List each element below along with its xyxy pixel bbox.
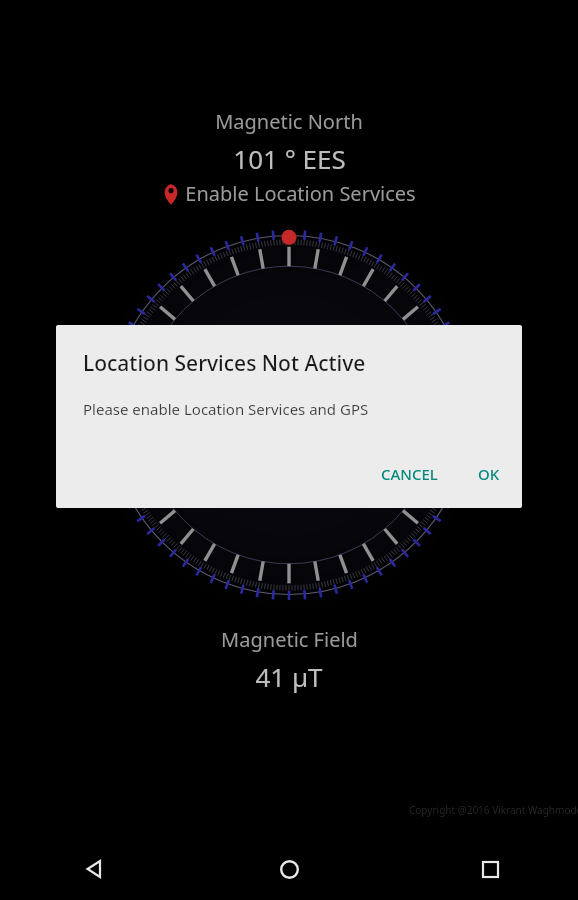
staticText: Please enable Location Services and GPS bbox=[83, 399, 369, 419]
staticText: Copyright @2016 Vikrant Waghmode bbox=[409, 803, 578, 817]
staticText: Location Services Not Active bbox=[83, 349, 366, 378]
staticText: CANCEL bbox=[381, 464, 438, 484]
other: Location bbox=[163, 182, 179, 206]
button[interactable]: OK bbox=[466, 456, 512, 492]
button[interactable]: CANCEL bbox=[369, 456, 450, 492]
staticText: Enable Location Services bbox=[185, 180, 416, 207]
staticText: OK bbox=[478, 464, 500, 484]
staticText: 41 µT bbox=[255, 659, 323, 694]
button[interactable]: Back bbox=[70, 845, 118, 893]
staticText: Magnetic North bbox=[215, 108, 363, 135]
button[interactable]: Home bbox=[265, 845, 313, 893]
button[interactable]: Recents bbox=[466, 845, 514, 893]
staticText: 101 ° EES bbox=[233, 141, 346, 176]
staticText: Magnetic Field bbox=[221, 626, 358, 653]
